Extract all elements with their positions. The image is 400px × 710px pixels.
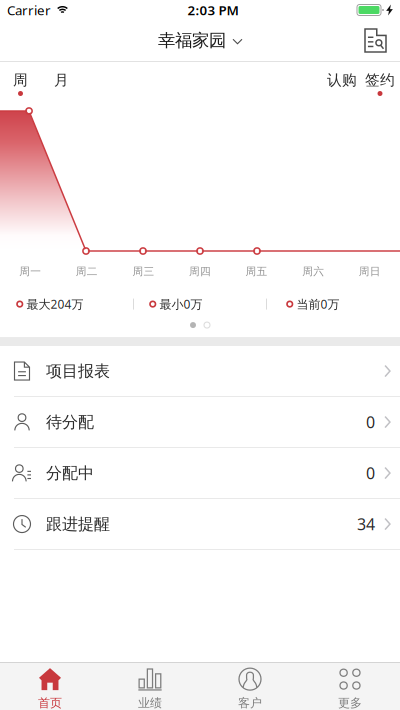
button[interactable]: 认购 bbox=[323, 71, 361, 96]
button[interactable]: 业绩 bbox=[100, 659, 200, 710]
staticText: 周 bbox=[13, 71, 28, 89]
button[interactable]: 首页 bbox=[0, 659, 100, 710]
staticText: 周日 bbox=[359, 265, 381, 278]
staticText: 首页 bbox=[38, 696, 62, 710]
staticText: 最大204万 bbox=[26, 296, 83, 312]
staticText: 更多 bbox=[338, 696, 362, 710]
staticText: 周二 bbox=[76, 265, 98, 278]
staticText: 周五 bbox=[246, 265, 268, 278]
staticText: 项目报表 bbox=[46, 361, 110, 381]
button[interactable]: 跟进提醒 bbox=[0, 499, 400, 550]
staticText: 最小0万 bbox=[159, 296, 202, 312]
staticText: 月 bbox=[54, 71, 69, 89]
button[interactable]: 项目报表 bbox=[0, 346, 400, 397]
staticText: 周一 bbox=[19, 265, 41, 278]
staticText: 业绩 bbox=[138, 696, 162, 710]
staticText: 周三 bbox=[132, 265, 154, 278]
button[interactable]: Search project reports bbox=[353, 23, 400, 58]
staticText: 认购 bbox=[327, 71, 357, 89]
staticText: 0 bbox=[366, 411, 375, 433]
staticText: 跟进提醒 bbox=[46, 514, 110, 534]
staticText: 签约 bbox=[365, 71, 395, 89]
button[interactable]: 周 bbox=[9, 71, 32, 96]
staticText: 0 bbox=[366, 462, 375, 484]
button[interactable]: 客户 bbox=[200, 659, 300, 710]
staticText: 周四 bbox=[189, 265, 211, 278]
staticText: 34 bbox=[357, 513, 375, 535]
staticText: 2:03 PM bbox=[187, 1, 238, 19]
staticText: 当前0万 bbox=[296, 296, 339, 312]
staticText: 待分配 bbox=[46, 412, 94, 432]
button[interactable]: 待分配 bbox=[0, 397, 400, 448]
staticText: 幸福家园 bbox=[158, 30, 226, 51]
staticText: 分配中 bbox=[46, 463, 94, 483]
staticText: 客户 bbox=[238, 696, 262, 710]
staticText: 周六 bbox=[302, 265, 324, 278]
button[interactable]: 签约 bbox=[361, 71, 399, 96]
button[interactable]: 更多 bbox=[300, 659, 400, 710]
button[interactable]: 幸福家园 bbox=[158, 30, 242, 51]
staticText: Carrier bbox=[7, 1, 51, 19]
button[interactable]: 分配中 bbox=[0, 448, 400, 499]
button[interactable]: 月 bbox=[50, 71, 73, 96]
